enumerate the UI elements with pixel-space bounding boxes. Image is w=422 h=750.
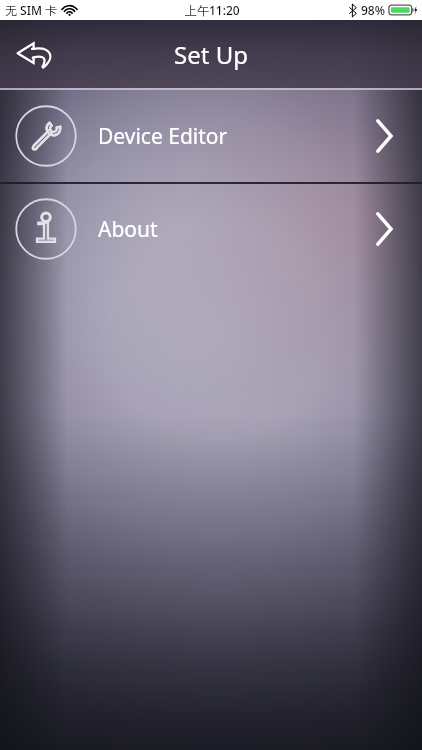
staticText: Device Editor [98, 122, 228, 151]
button[interactable]: Device Editor [0, 90, 422, 182]
button[interactable]: Back [8, 26, 64, 82]
staticText: About [98, 215, 158, 244]
staticText: 上午11:20 [185, 2, 240, 18]
staticText: Set Up [0, 38, 422, 71]
staticText: 98% [361, 2, 385, 18]
button[interactable]: About [0, 184, 422, 274]
staticText: 无 SIM 卡 [5, 2, 58, 18]
